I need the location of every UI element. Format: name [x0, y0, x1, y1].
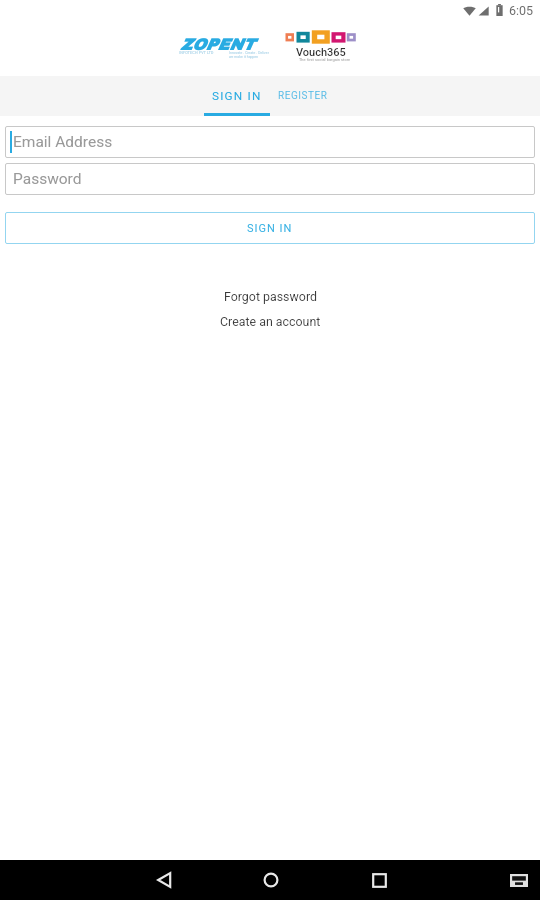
button[interactable]: Email Address: [5, 126, 535, 158]
button[interactable]: Recent apps: [349, 860, 409, 900]
staticText: 6:05: [509, 3, 534, 18]
staticText: INFOTECH PVT LTD: [179, 51, 214, 55]
button[interactable]: Create an account: [212, 312, 329, 331]
staticText: we make it happen: [229, 55, 259, 59]
button[interactable]: Password: [5, 163, 535, 195]
staticText: SIGN IN: [247, 222, 293, 235]
staticText: SIGN IN: [212, 89, 262, 103]
staticText: Email Address: [13, 133, 113, 151]
staticText: Password: [13, 170, 82, 188]
button[interactable]: SIGN IN: [204, 76, 269, 116]
staticText: Vouch365: [296, 46, 346, 59]
button[interactable]: Home: [241, 860, 301, 900]
button[interactable]: Back: [134, 860, 194, 900]
staticText: Create an account: [220, 314, 321, 329]
button[interactable]: Switch keyboard: [499, 860, 539, 900]
button[interactable]: SIGN IN: [5, 212, 535, 244]
staticText: The first social bargain store: [299, 57, 351, 61]
button[interactable]: Forgot password: [216, 287, 325, 306]
staticText: Forgot password: [224, 289, 317, 304]
staticText: ZOPENT: [180, 36, 255, 53]
button[interactable]: REGISTER: [275, 76, 331, 116]
staticText: Innovate . Create . Deliver: [229, 51, 269, 55]
staticText: REGISTER: [278, 90, 328, 102]
